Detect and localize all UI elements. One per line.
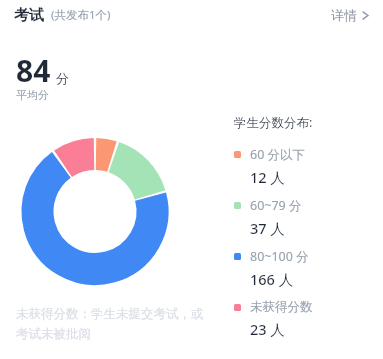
- staticText: (共发布1个): [51, 7, 111, 23]
- staticText: 12 人: [250, 167, 285, 187]
- staticText: 分: [56, 70, 69, 86]
- staticText: 考试: [14, 6, 44, 25]
- staticText: 37 人: [250, 218, 285, 238]
- staticText: 23 人: [250, 319, 285, 339]
- button[interactable]: 未获得分数: [234, 299, 313, 339]
- staticText: 60 分以下: [250, 146, 306, 163]
- staticText: 未获得分数：学生未提交考试，或 考试未被批阅: [16, 306, 216, 342]
- staticText: 平均分: [16, 88, 49, 102]
- staticText: 80~100 分: [250, 248, 309, 265]
- staticText: 学生分数分布:: [234, 114, 313, 131]
- button[interactable]: 60~79 分: [234, 197, 302, 238]
- button[interactable]: 80~100 分: [234, 248, 309, 289]
- staticText: 84: [16, 50, 51, 91]
- button[interactable]: 60 分以下: [234, 146, 306, 187]
- staticText: 166 人: [250, 269, 294, 289]
- button[interactable]: 详情: [329, 3, 371, 27]
- staticText: 60~79 分: [250, 197, 302, 214]
- staticText: 未获得分数: [250, 299, 313, 315]
- staticText: 详情: [331, 7, 357, 23]
